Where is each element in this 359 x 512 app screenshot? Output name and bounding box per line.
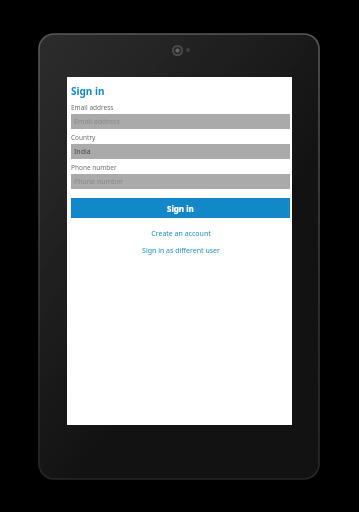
staticText: Sign in as different user bbox=[142, 246, 220, 256]
staticText: India bbox=[74, 147, 91, 157]
button[interactable]: Create an account bbox=[71, 227, 290, 240]
button[interactable]: Sign in as different user bbox=[71, 244, 290, 257]
staticText: Sign in bbox=[71, 84, 105, 98]
staticText: Email address bbox=[71, 103, 114, 112]
button[interactable]: India bbox=[71, 144, 290, 159]
staticText: Country bbox=[71, 133, 96, 142]
button[interactable]: Phone number bbox=[71, 174, 290, 189]
staticText: Phone number bbox=[71, 163, 117, 172]
staticText: Create an account bbox=[151, 229, 211, 239]
staticText: Email address bbox=[74, 117, 120, 127]
button[interactable]: Email address bbox=[71, 114, 290, 129]
button[interactable]: Sign in bbox=[71, 198, 290, 218]
staticText: Phone number bbox=[74, 177, 124, 187]
staticText: Sign in bbox=[167, 203, 194, 214]
